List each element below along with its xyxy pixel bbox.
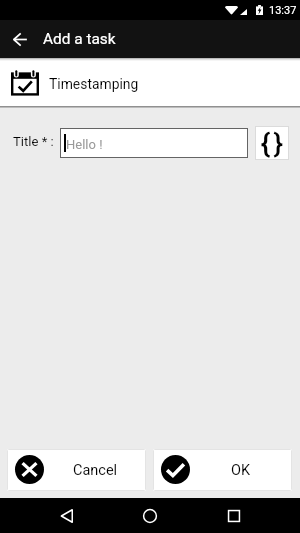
button[interactable]: Timestamping	[0, 58, 300, 106]
button[interactable]: OK	[153, 449, 292, 491]
staticText: Cancel	[73, 462, 118, 479]
staticText: 13:37	[269, 4, 297, 17]
staticText: Hello !	[66, 137, 103, 152]
staticText: Title * :	[13, 134, 54, 149]
staticText: {	[261, 128, 270, 158]
staticText: Add a task	[43, 30, 116, 48]
staticText: OK	[231, 462, 251, 479]
button[interactable]: Hello !	[60, 128, 248, 158]
button[interactable]: Navigate up	[0, 20, 40, 58]
button[interactable]: Home	[127, 498, 173, 533]
staticText: }	[274, 128, 283, 158]
button[interactable]: Recent apps	[211, 498, 257, 533]
button[interactable]: Cancel	[7, 449, 146, 491]
button[interactable]: Back	[43, 498, 89, 533]
button[interactable]: Insert variable	[255, 126, 289, 160]
staticText: Timestamping	[49, 76, 139, 92]
